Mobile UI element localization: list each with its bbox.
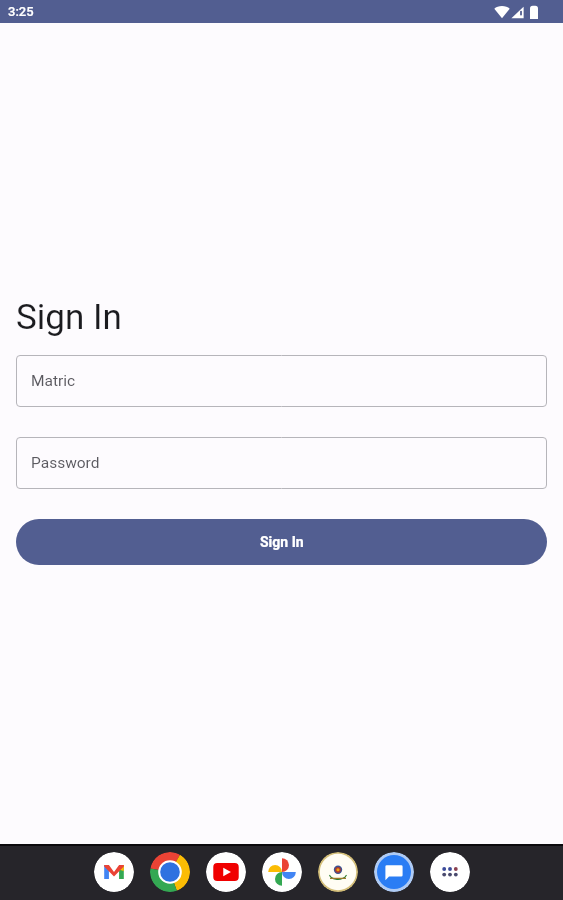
button[interactable]: Matric bbox=[16, 355, 547, 407]
staticText: Sign In bbox=[260, 534, 304, 550]
other: Wi-Fi bbox=[494, 5, 510, 19]
button[interactable]: Messages bbox=[374, 852, 414, 892]
staticText: Password bbox=[31, 454, 100, 472]
button[interactable]: Chrome bbox=[150, 852, 190, 892]
button[interactable]: Password bbox=[16, 437, 547, 489]
button[interactable]: University app bbox=[318, 852, 358, 892]
button[interactable]: Photos bbox=[262, 852, 302, 892]
staticText: Matric bbox=[31, 372, 76, 390]
button[interactable]: Gmail bbox=[94, 852, 134, 892]
staticText: Sign In bbox=[16, 297, 122, 338]
staticText: 3:25 bbox=[8, 4, 34, 19]
button[interactable]: Sign In bbox=[16, 519, 547, 565]
button[interactable]: YouTube bbox=[206, 852, 246, 892]
other: Battery bbox=[530, 5, 538, 19]
other: Signal bbox=[511, 6, 524, 19]
button[interactable]: All apps bbox=[430, 852, 470, 892]
